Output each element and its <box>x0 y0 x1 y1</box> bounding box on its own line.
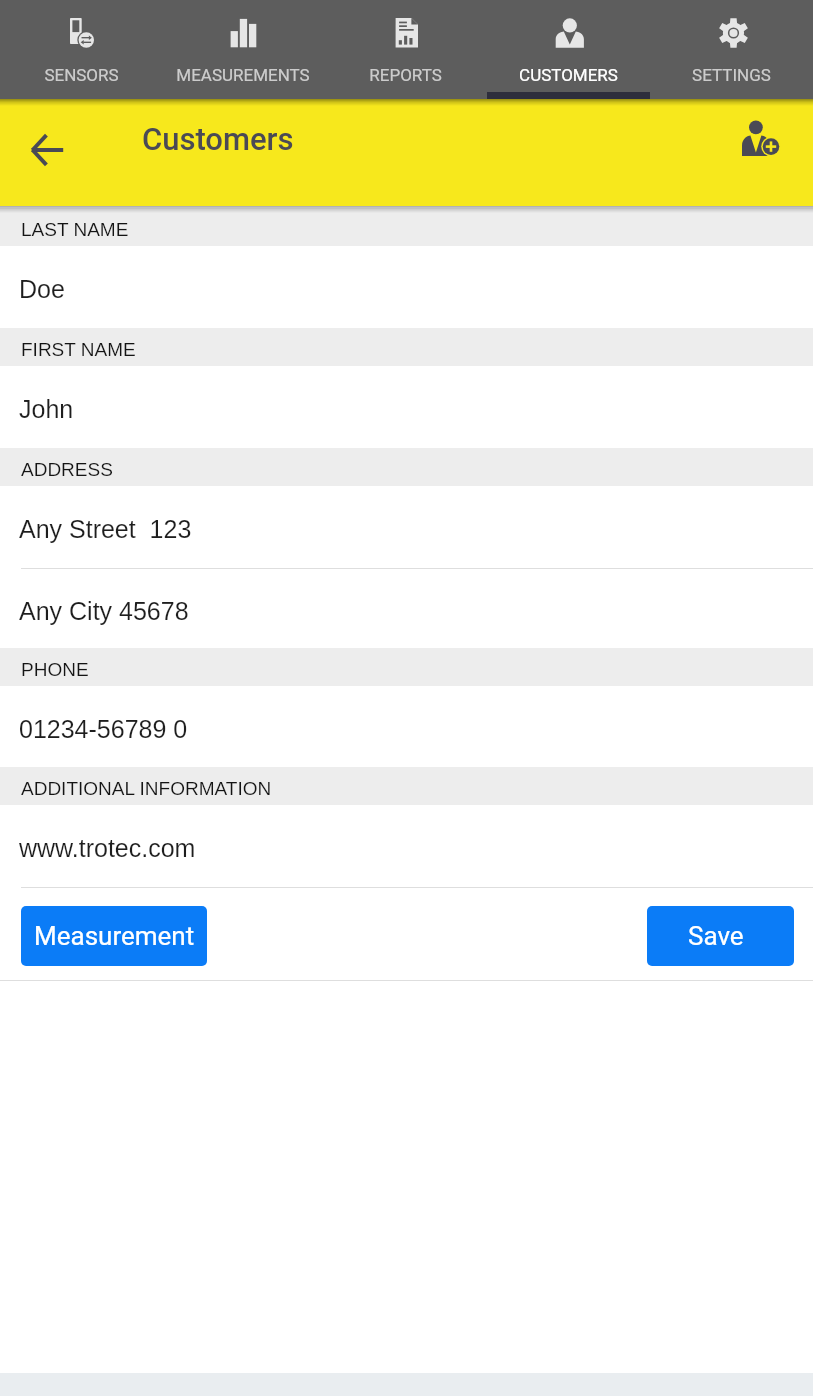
staticText: MEASUREMENTS <box>176 65 310 85</box>
staticText: SETTINGS <box>692 65 771 85</box>
staticText: Save <box>688 921 744 951</box>
staticText: www.trotec.com <box>19 834 196 862</box>
button[interactable]: Doe <box>0 246 813 328</box>
button[interactable]: www.trotec.com <box>0 805 813 887</box>
staticText: Doe <box>19 275 65 303</box>
button[interactable]: SENSORS <box>0 0 162 99</box>
staticText: Any City 45678 <box>19 597 189 625</box>
staticText: Customers <box>142 121 294 157</box>
staticText: 01234-56789 0 <box>19 715 188 743</box>
button[interactable]: SETTINGS <box>650 0 813 99</box>
staticText: PHONE <box>21 659 89 680</box>
staticText: ADDITIONAL INFORMATION <box>21 778 272 799</box>
button[interactable]: John <box>0 366 813 448</box>
staticText: LAST NAME <box>21 219 129 240</box>
staticText: Measurement <box>34 921 195 951</box>
button[interactable]: Save <box>647 906 794 966</box>
staticText: John <box>19 395 74 423</box>
staticText: Any Street 123 <box>19 515 192 543</box>
staticText: ADDRESS <box>21 459 113 480</box>
button[interactable]: REPORTS <box>324 0 487 99</box>
staticText: CUSTOMERS <box>519 65 618 85</box>
button[interactable]: Any City 45678 <box>0 569 813 648</box>
button[interactable]: Any Street 123 <box>0 486 813 568</box>
button[interactable]: CUSTOMERS <box>487 0 650 99</box>
button[interactable]: Back <box>28 130 68 170</box>
button[interactable]: Add customer <box>740 117 784 161</box>
button[interactable]: MEASUREMENTS <box>162 0 324 99</box>
staticText: SENSORS <box>44 65 119 85</box>
staticText: FIRST NAME <box>21 339 136 360</box>
button[interactable]: Measurement <box>21 906 207 966</box>
staticText: REPORTS <box>369 65 442 85</box>
button[interactable]: 01234-56789 0 <box>0 686 813 767</box>
